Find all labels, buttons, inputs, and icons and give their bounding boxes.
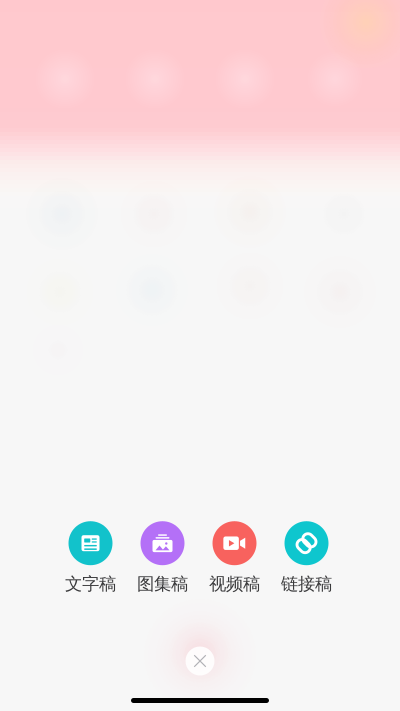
button[interactable]: 链接稿 [270,521,342,594]
button[interactable]: 文字稿 [54,521,126,594]
staticText: 链接稿 [281,573,332,594]
staticText: 文字稿 [65,573,116,594]
staticText: 视频稿 [209,573,260,594]
button[interactable]: 图集稿 [126,521,198,594]
button[interactable]: 视频稿 [198,521,270,594]
button[interactable]: Close [185,646,214,675]
staticText: 图集稿 [137,573,188,594]
